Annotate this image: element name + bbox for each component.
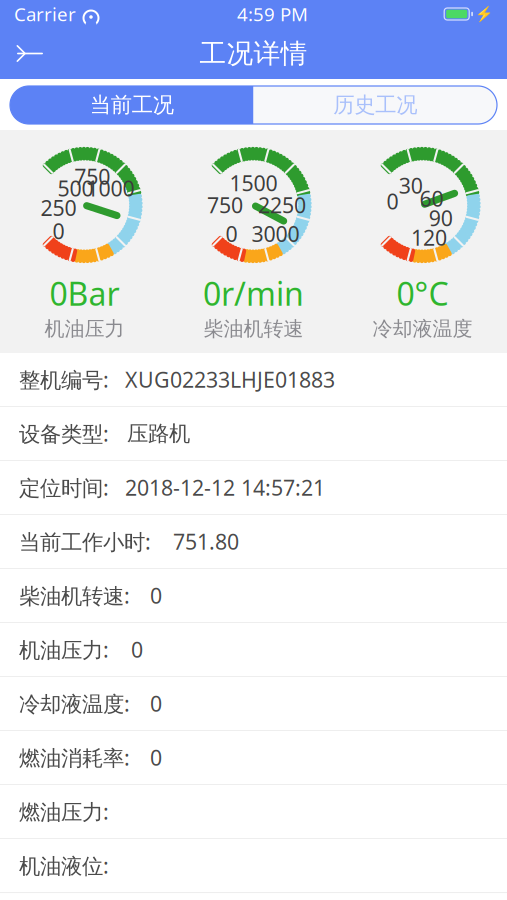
staticText: 750	[74, 162, 110, 190]
staticText: 0°C	[396, 272, 448, 314]
staticText: 250	[40, 193, 76, 222]
staticText: 工况详情	[199, 37, 307, 70]
staticText: 设备类型:	[19, 419, 109, 448]
staticText: ⚡	[475, 6, 493, 22]
staticText: 柴油机转速:	[19, 581, 130, 610]
staticText: 冷却液温度:	[19, 689, 130, 718]
staticText: 机油液位:	[19, 851, 109, 880]
staticText: 0	[150, 581, 162, 610]
button[interactable]: 当前工况	[10, 86, 253, 124]
staticText: 0Bar	[49, 272, 119, 314]
staticText: 4:59 PM	[237, 2, 308, 26]
staticText: 750	[207, 191, 243, 219]
staticText: 机油压力	[44, 316, 124, 341]
staticText: 冷却液温度	[372, 316, 472, 341]
staticText: 压路机	[127, 420, 190, 447]
staticText: 当前工作小时:	[19, 527, 151, 556]
staticText: 机油压力:	[19, 635, 109, 664]
staticText: 柴油机转速	[203, 316, 303, 341]
staticText: 当前工况	[90, 92, 174, 118]
staticText: 0	[225, 219, 237, 248]
staticText: XUG02233LHJE01883	[125, 365, 335, 394]
button[interactable]: Back	[8, 31, 52, 75]
staticText: 1500	[229, 169, 277, 197]
staticText: 0	[150, 689, 162, 718]
staticText: 0	[150, 743, 162, 772]
button[interactable]: 历史工况	[253, 86, 497, 124]
staticText: 0	[131, 635, 143, 664]
staticText: 2018-12-12 14:57:21	[125, 473, 325, 502]
staticText: 120	[411, 223, 447, 252]
staticText: 751.80	[173, 527, 239, 556]
staticText: Carrier	[14, 2, 76, 26]
staticText: 燃油消耗率:	[19, 743, 130, 772]
staticText: 60	[420, 184, 444, 213]
staticText: 整机编号:	[19, 365, 109, 394]
staticText: 燃油压力:	[19, 797, 109, 826]
staticText: 0r/min	[203, 272, 304, 314]
staticText: 0	[387, 187, 399, 215]
staticText: 1000	[86, 174, 134, 202]
staticText: 30	[399, 171, 423, 200]
staticText: 3000	[252, 219, 300, 248]
staticText: 90	[429, 204, 453, 232]
staticText: 2250	[258, 191, 306, 219]
staticText: 历史工况	[333, 92, 417, 118]
staticText: 定位时间:	[19, 473, 109, 502]
staticText: 0	[52, 217, 64, 245]
staticText: 500	[57, 174, 93, 202]
